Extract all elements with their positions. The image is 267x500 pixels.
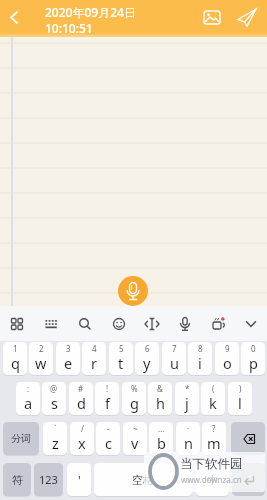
button[interactable]: @ [42, 382, 66, 415]
button[interactable]: 3 [56, 342, 80, 375]
button[interactable]: 符 [3, 463, 31, 496]
staticText: x [78, 433, 86, 453]
staticText: t [118, 353, 124, 373]
button[interactable]: 8 [188, 342, 212, 375]
button[interactable]: 7 [162, 342, 186, 375]
button[interactable]: - [96, 422, 120, 455]
staticText: : [27, 383, 30, 394]
staticText: 空格 [132, 473, 154, 487]
button[interactable]: ! [95, 382, 119, 415]
button[interactable]: 空格 [94, 463, 192, 496]
staticText: 10:10:51 [45, 20, 93, 36]
staticText: 4 [92, 343, 97, 354]
button[interactable]: 1 [3, 342, 27, 375]
staticText: o [223, 353, 232, 373]
button[interactable] [102, 306, 135, 341]
staticText: s [51, 393, 58, 413]
staticText: 0 [251, 343, 256, 354]
staticText: ~ [133, 423, 138, 434]
button[interactable] [0, 306, 34, 341]
button[interactable]: 中 [196, 463, 229, 496]
button[interactable]: # [69, 382, 93, 415]
staticText: 123 [39, 472, 58, 487]
staticText: q [11, 353, 20, 373]
staticText: k [209, 393, 217, 413]
staticText: 6 [145, 343, 150, 354]
button[interactable] [168, 306, 201, 341]
staticText: j [185, 393, 189, 413]
button[interactable]: 123 [34, 463, 63, 496]
staticText: @ [50, 383, 58, 394]
button[interactable] [234, 306, 267, 341]
staticText: y [143, 353, 151, 373]
button[interactable]: ) [228, 382, 252, 415]
staticText: ? [212, 423, 216, 434]
button[interactable]: 2 [29, 342, 53, 375]
staticText: ' [78, 472, 81, 488]
staticText: * [185, 383, 190, 394]
staticText: … [158, 423, 165, 434]
staticText: f [105, 393, 110, 413]
staticText: a [24, 393, 33, 413]
staticText: 9 [225, 343, 230, 354]
button[interactable]: … [149, 422, 173, 455]
staticText: 7 [172, 343, 177, 354]
button[interactable]: / [70, 422, 94, 455]
button[interactable] [0, 0, 30, 37]
button[interactable]: 9 [215, 342, 239, 375]
staticText: e [64, 353, 73, 373]
button[interactable] [201, 306, 234, 341]
button[interactable]: ~ [123, 422, 147, 455]
staticText: 5 [119, 343, 124, 354]
staticText: z [52, 433, 59, 453]
staticText: 2 [39, 343, 44, 354]
button[interactable]: ? [202, 422, 226, 455]
staticText: h [156, 393, 165, 413]
staticText: c [105, 433, 112, 453]
button[interactable] [231, 422, 265, 455]
button[interactable] [232, 463, 265, 496]
staticText: r [91, 353, 97, 373]
button[interactable] [34, 306, 68, 341]
staticText: - [107, 423, 110, 434]
button[interactable]: · [176, 422, 200, 455]
button[interactable]: : [16, 382, 40, 415]
staticText: www.downza.cn [181, 474, 242, 485]
staticText: ! [106, 383, 109, 394]
staticText: w [35, 353, 47, 373]
button[interactable]: ' [67, 463, 91, 496]
staticText: n [184, 433, 193, 453]
staticText: m [207, 433, 221, 453]
button[interactable]: * [175, 382, 199, 415]
button[interactable]: 5 [109, 342, 133, 375]
staticText: 当下软件园 [180, 456, 243, 472]
button[interactable]: % [122, 382, 146, 415]
staticText: ( [212, 383, 215, 394]
button[interactable] [118, 276, 148, 306]
staticText: l [238, 393, 242, 413]
button[interactable] [135, 306, 168, 341]
staticText: ) [239, 383, 242, 394]
staticText: · [187, 423, 190, 434]
staticText: b [157, 433, 166, 453]
staticText: 符 [12, 473, 23, 487]
button[interactable] [68, 306, 102, 341]
staticText: g [130, 393, 139, 413]
staticText: 2020年09月24日 [45, 4, 136, 20]
button[interactable]: 4 [82, 342, 106, 375]
button[interactable]: & [148, 382, 172, 415]
staticText: 1 [13, 343, 18, 354]
button[interactable] [187, 0, 267, 37]
staticText: 3 [66, 343, 71, 354]
button[interactable]: 6 [135, 342, 159, 375]
staticText: i [198, 353, 202, 373]
staticText: # [78, 383, 84, 394]
staticText: & [157, 383, 163, 394]
button[interactable]: 分词 [3, 422, 39, 455]
staticText: 8 [198, 343, 203, 354]
button[interactable]: ` [43, 422, 67, 455]
staticText: v [131, 433, 139, 453]
staticText: d [77, 393, 86, 413]
button[interactable]: 0 [241, 342, 265, 375]
button[interactable]: ( [201, 382, 225, 415]
